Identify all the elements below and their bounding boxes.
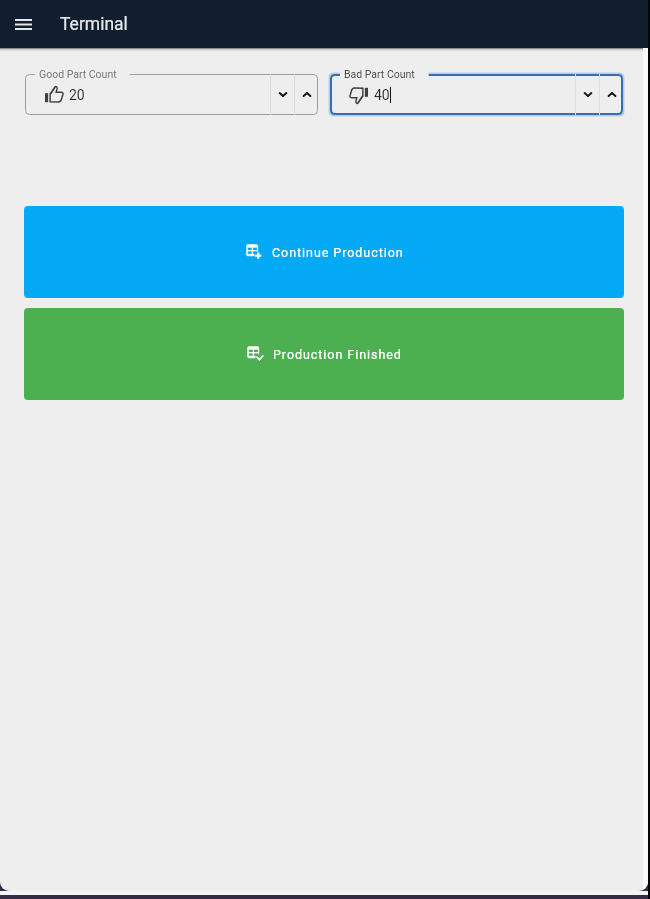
staticText: Production Finished: [273, 347, 402, 362]
button[interactable]: Increase Bad Part Count: [600, 74, 623, 115]
button[interactable]: Decrease Bad Part Count: [576, 74, 599, 115]
staticText: Bad Part Count: [344, 68, 415, 80]
staticText: 20: [69, 87, 85, 103]
button[interactable]: Production Finished: [24, 308, 624, 400]
staticText: Terminal: [60, 14, 128, 35]
button[interactable]: Decrease Good Part Count: [271, 74, 294, 115]
button[interactable]: Increase Good Part Count: [295, 74, 318, 115]
staticText: Good Part Count: [39, 68, 117, 80]
button[interactable]: Open navigation menu: [0, 0, 46, 48]
button[interactable]: Continue Production: [24, 206, 624, 298]
staticText: Continue Production: [272, 245, 404, 260]
staticText: 40: [374, 87, 390, 103]
